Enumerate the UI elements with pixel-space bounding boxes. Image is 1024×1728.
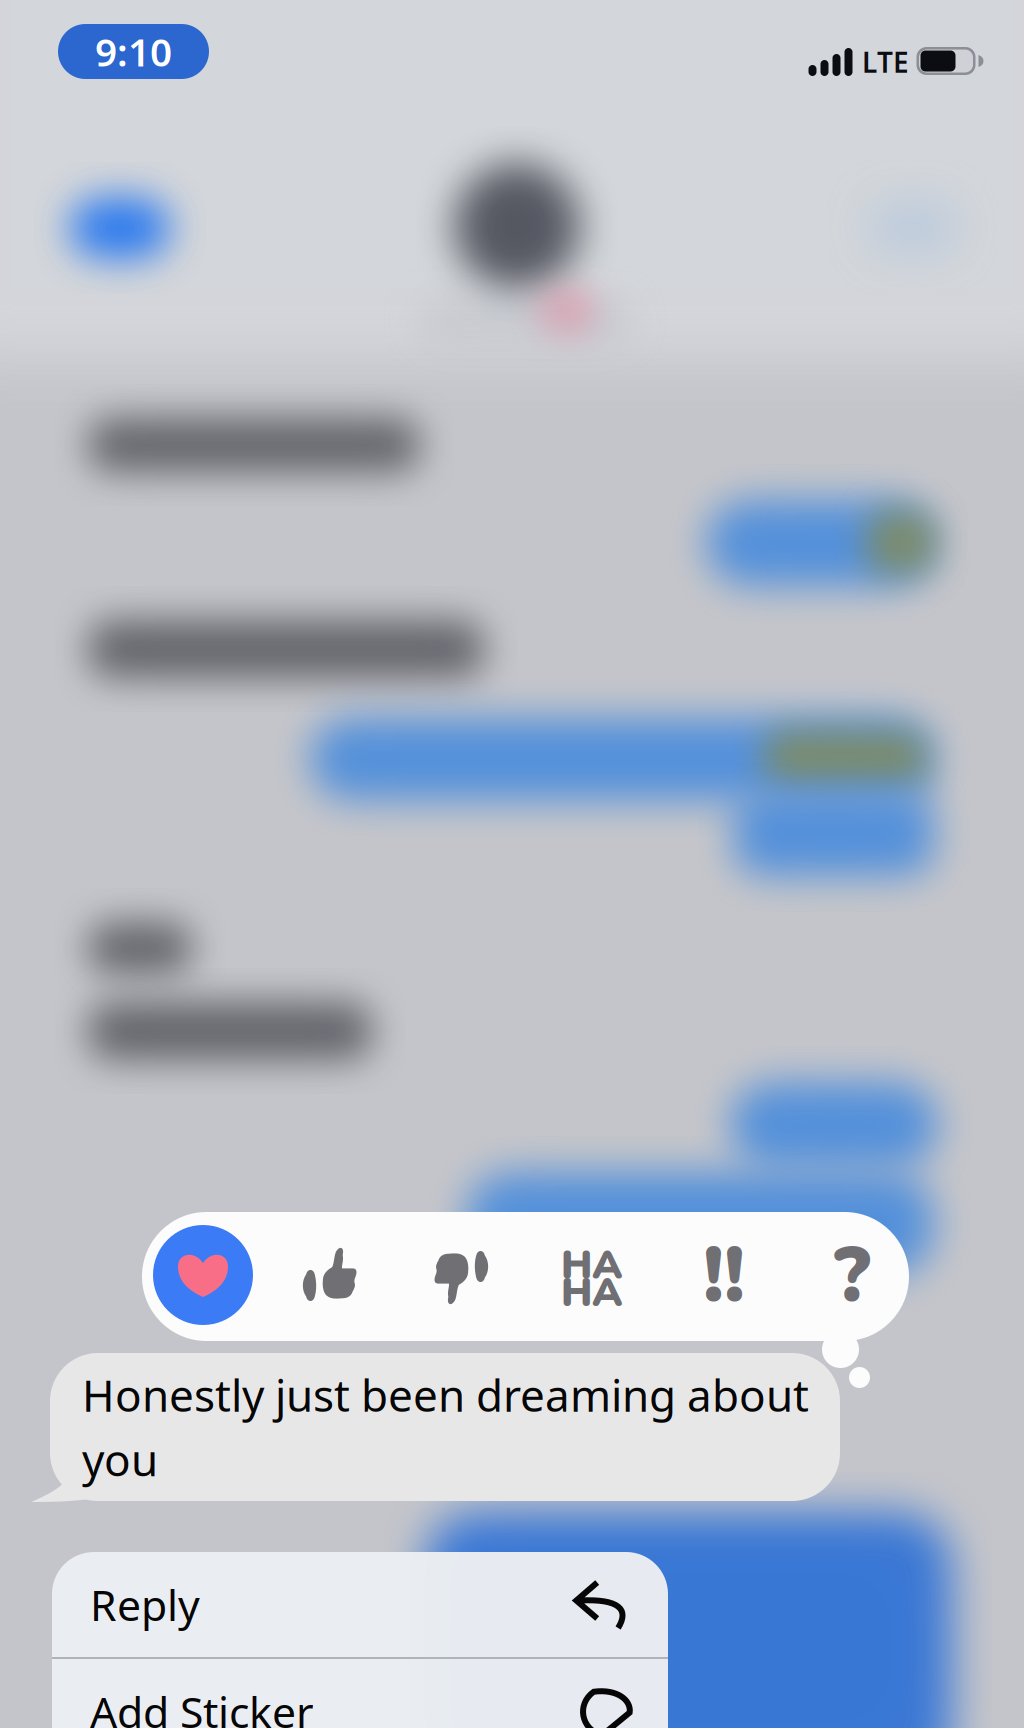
staticText: HA [561, 1265, 623, 1320]
staticText: 9:10 [95, 26, 172, 77]
button[interactable]: Thumbs down [426, 1247, 488, 1308]
staticText: HA [561, 1238, 623, 1292]
button[interactable]: Exclamation [698, 1238, 750, 1314]
staticText: !! [703, 1223, 745, 1329]
button[interactable]: Add Sticker [52, 1659, 668, 1728]
staticText: you [82, 1430, 158, 1488]
staticText: Reply [90, 1576, 200, 1633]
staticText: LTE [862, 43, 909, 81]
staticText: ? [833, 1223, 870, 1329]
button[interactable]: Thumbs up [303, 1244, 365, 1305]
staticText: Honestly just been dreaming about [82, 1366, 809, 1424]
staticText: Add Sticker [90, 1683, 314, 1728]
button[interactable]: Reply [52, 1552, 668, 1657]
button[interactable]: Question mark [827, 1238, 877, 1314]
button[interactable]: Haha [561, 1239, 661, 1319]
button[interactable]: Love [153, 1224, 253, 1326]
